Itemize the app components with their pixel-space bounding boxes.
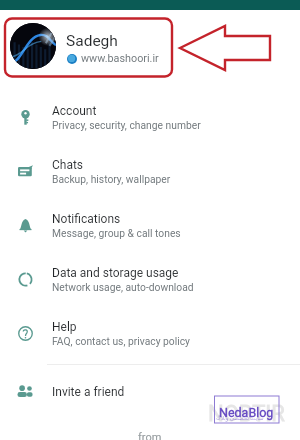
staticText: Invite a friend (52, 385, 125, 399)
other: Help (0, 326, 52, 341)
other: Invite a friend (0, 384, 52, 400)
other: Notifications (0, 218, 52, 233)
button[interactable]: Invite a friend (0, 365, 300, 419)
staticText: Sadegh (66, 32, 118, 50)
staticText: Chats (52, 158, 84, 172)
staticText: from (138, 431, 162, 440)
staticText: Network usage, auto-download (52, 281, 194, 293)
button[interactable]: Help (0, 306, 300, 360)
other: Data (0, 272, 52, 287)
other: Chats (0, 164, 52, 179)
button[interactable]: Chats (0, 144, 300, 198)
other: Account (0, 110, 52, 125)
staticText: Data and storage usage (52, 266, 179, 280)
button[interactable]: Notifications (0, 198, 300, 252)
staticText: سایت تخصصی وبلاگ (216, 415, 264, 421)
staticText: NedaBlog (219, 405, 274, 420)
staticText: Backup, history, wallpaper (52, 173, 171, 185)
staticText: Account (52, 104, 97, 118)
staticText: www.bashoori.ir (81, 52, 159, 65)
staticText: Notifications (52, 212, 121, 226)
staticText: Help (52, 320, 77, 334)
staticText: NOBTIR (208, 401, 285, 427)
button[interactable]: Sadegh (0, 18, 300, 74)
button[interactable]: Account (0, 90, 300, 144)
staticText: FAQ, contact us, privacy policy (52, 335, 190, 347)
staticText: Privacy, security, change number (52, 119, 201, 131)
button[interactable]: Data (0, 252, 300, 306)
staticText: Message, group & call tones (52, 227, 181, 239)
